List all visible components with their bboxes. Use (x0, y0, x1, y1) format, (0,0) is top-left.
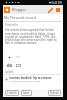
button[interactable]: Publish (5, 90, 19, 96)
staticText: Save (23, 91, 30, 95)
staticText: My Personal record (4, 15, 36, 20)
staticText: At Rockdil Manor Tap to change (9, 80, 41, 83)
staticText: Post title (5, 23, 19, 27)
button[interactable]: Choose from gallery (14, 61, 22, 69)
button[interactable]: Save (21, 90, 32, 96)
staticText: Publish (7, 91, 17, 95)
button[interactable]: Take photo (5, 61, 13, 69)
button[interactable]: Insert special (5, 53, 13, 61)
staticText: Blogger (12, 7, 27, 12)
staticText: 5:42 PM (52, 1, 62, 5)
button[interactable]: Delete (48, 90, 61, 96)
button[interactable]: Location disabled. Tap to activate (3, 75, 63, 84)
button[interactable]: Insert link (14, 53, 22, 61)
staticText: the united states agreed that british me… (5, 28, 59, 44)
button[interactable]: New post (46, 6, 54, 14)
staticText: Location disabled. Tap to activate (9, 76, 52, 79)
staticText: Labels (5, 70, 14, 74)
button[interactable]: Overflow menu (54, 6, 62, 14)
staticText: Delete (50, 91, 59, 95)
